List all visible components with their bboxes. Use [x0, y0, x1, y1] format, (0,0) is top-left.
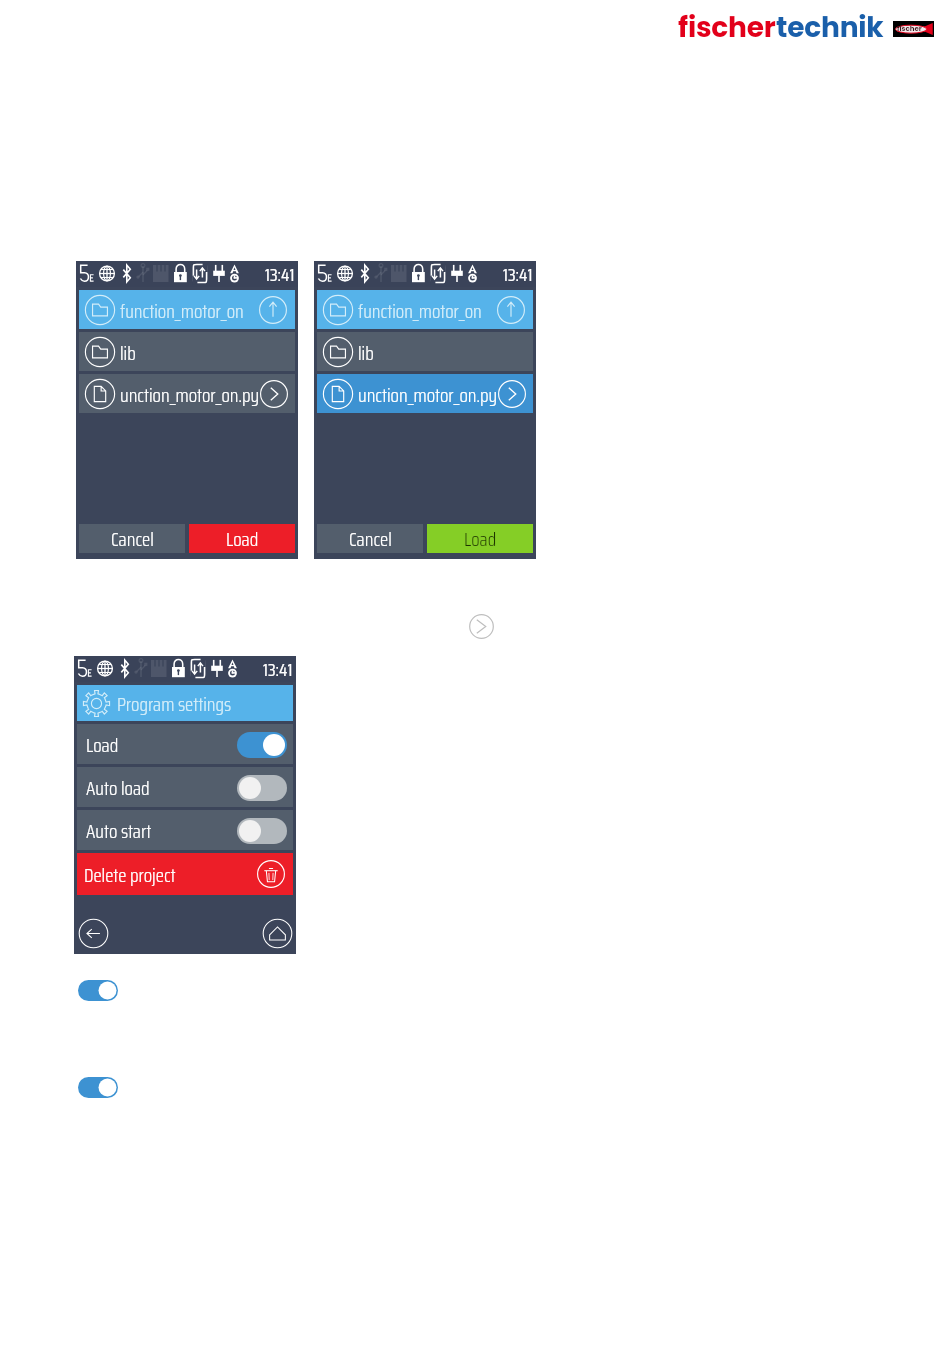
button[interactable]: lib	[79, 332, 295, 371]
button[interactable]: unction_motor_on.py	[79, 374, 295, 413]
button[interactable]: Home	[262, 918, 293, 949]
button[interactable]: Go up one folder	[259, 296, 287, 324]
button[interactable]: Auto load	[77, 767, 293, 807]
staticText: fischer	[897, 24, 922, 34]
button[interactable]	[237, 732, 287, 758]
button[interactable]: Toggle on	[78, 980, 118, 1001]
button[interactable]: Open	[260, 380, 288, 408]
staticText: Program settings	[117, 689, 232, 719]
button[interactable]: Next	[469, 614, 494, 639]
staticText: 13:41	[265, 261, 295, 287]
staticText: Auto load	[86, 773, 150, 803]
button[interactable]: Back	[78, 918, 109, 949]
staticText: Delete project	[84, 860, 176, 890]
staticText: function_motor_on	[120, 296, 244, 326]
staticText: 13:41	[503, 261, 533, 287]
button[interactable]: Toggle on	[78, 1077, 118, 1098]
staticText: lib	[120, 338, 136, 368]
staticText: Auto start	[86, 816, 152, 846]
staticText: unction_motor_on.py	[358, 380, 498, 410]
button[interactable]: Load	[427, 524, 533, 553]
staticText: unction_motor_on.py	[120, 380, 260, 410]
staticText: Load	[86, 730, 119, 760]
button[interactable]: Program settings	[77, 685, 293, 721]
button[interactable]: function_motor_on	[79, 290, 295, 329]
staticText: Cancel	[111, 524, 154, 553]
button[interactable]: Open	[498, 380, 526, 408]
staticText: lib	[358, 338, 374, 368]
staticText: function_motor_on	[358, 296, 482, 326]
button[interactable]: Cancel	[79, 524, 185, 553]
button[interactable]: Load	[77, 724, 293, 764]
button[interactable]: Go up one folder	[497, 296, 525, 324]
staticText: Cancel	[349, 524, 392, 553]
staticText: fischer	[678, 8, 776, 47]
button[interactable]: unction_motor_on.py	[317, 374, 533, 413]
button[interactable]: Load	[189, 524, 295, 553]
button[interactable]: Cancel	[317, 524, 423, 553]
staticText: Load	[464, 524, 497, 553]
button[interactable]: Delete project	[77, 853, 293, 895]
staticText: technik	[776, 8, 884, 47]
button[interactable]: lib	[317, 332, 533, 371]
button[interactable]: function_motor_on	[317, 290, 533, 329]
staticText: Load	[226, 524, 259, 553]
staticText: 13:41	[263, 656, 293, 682]
button[interactable]	[237, 818, 287, 844]
button[interactable]: Auto start	[77, 810, 293, 850]
button[interactable]	[237, 775, 287, 801]
